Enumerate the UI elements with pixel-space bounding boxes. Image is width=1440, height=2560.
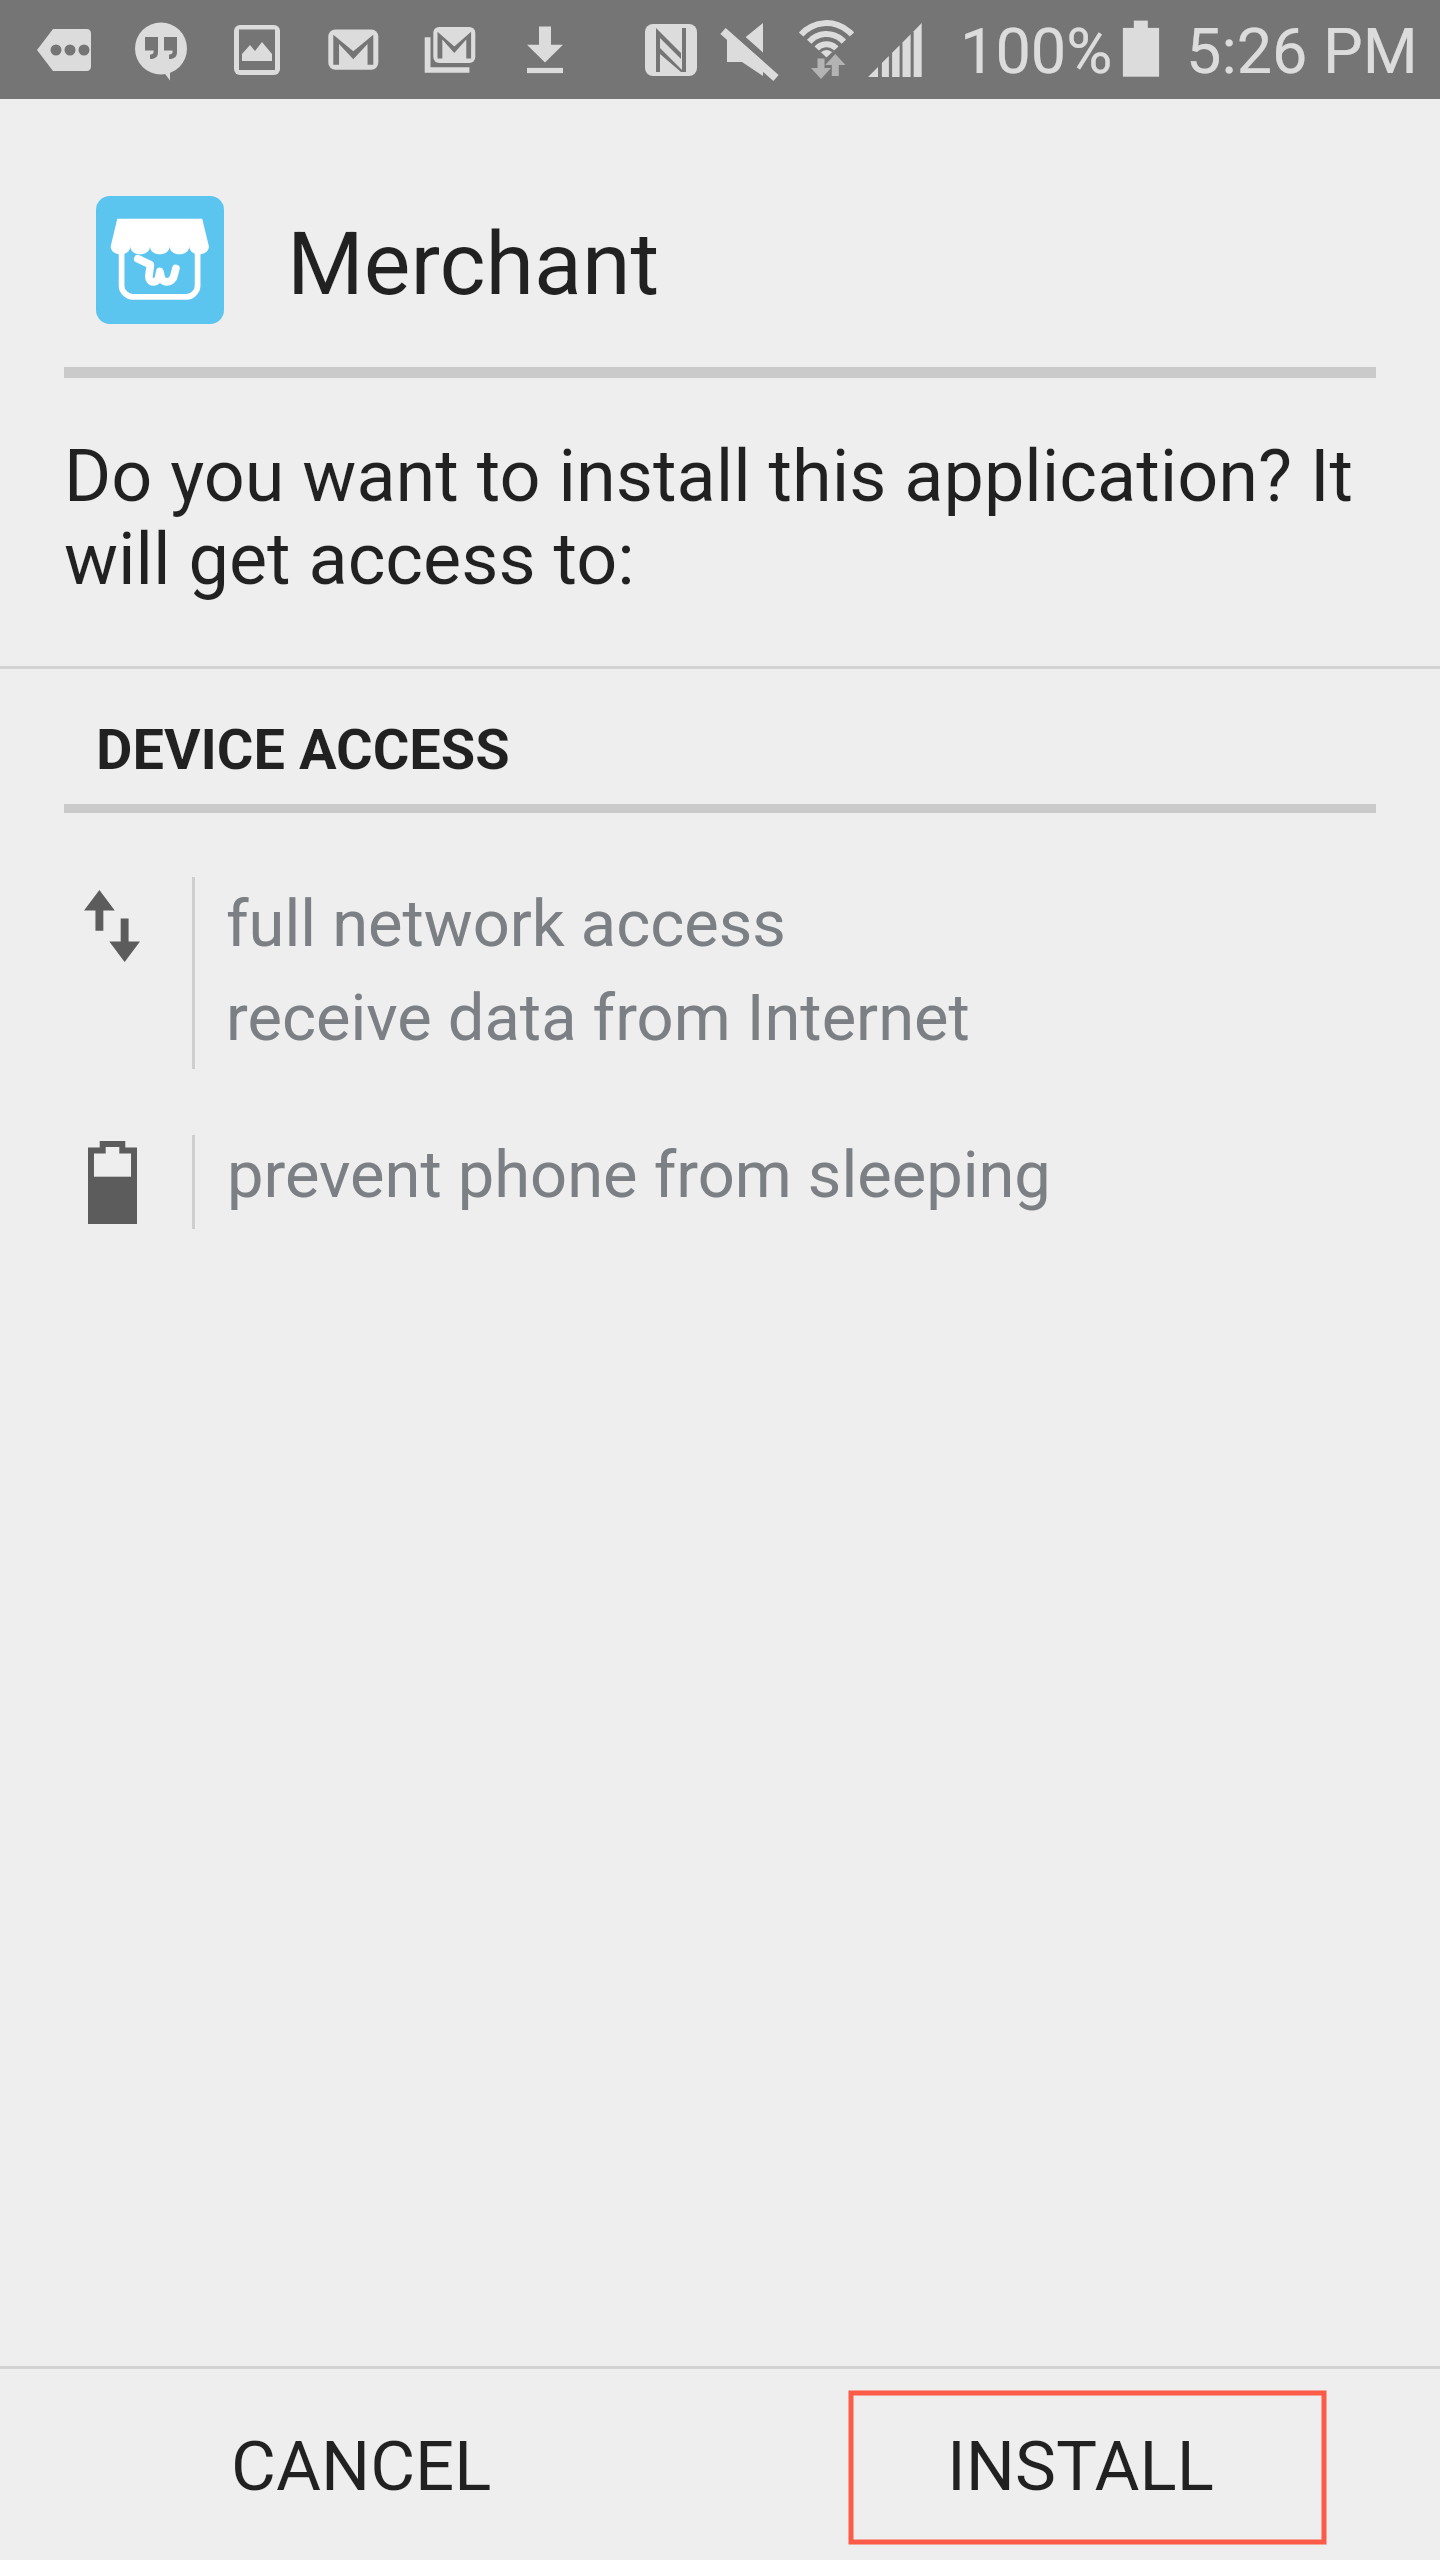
staticText: 100% <box>960 15 1113 89</box>
staticText: DEVICE ACCESS <box>96 717 510 783</box>
staticText: prevent phone from sleeping <box>227 1137 1051 1213</box>
other: Merchant app icon <box>96 196 224 324</box>
staticText: CANCEL <box>231 2426 492 2507</box>
staticText: INSTALL <box>947 2426 1214 2507</box>
staticText: full network access receive data from In… <box>226 886 970 1056</box>
button[interactable]: INSTALL <box>843 2391 1318 2542</box>
button[interactable]: CANCEL <box>124 2391 599 2542</box>
staticText: Do you want to install this application?… <box>64 434 1394 601</box>
staticText: Merchant <box>287 212 660 315</box>
staticText: 5:26 PM <box>1186 15 1418 89</box>
